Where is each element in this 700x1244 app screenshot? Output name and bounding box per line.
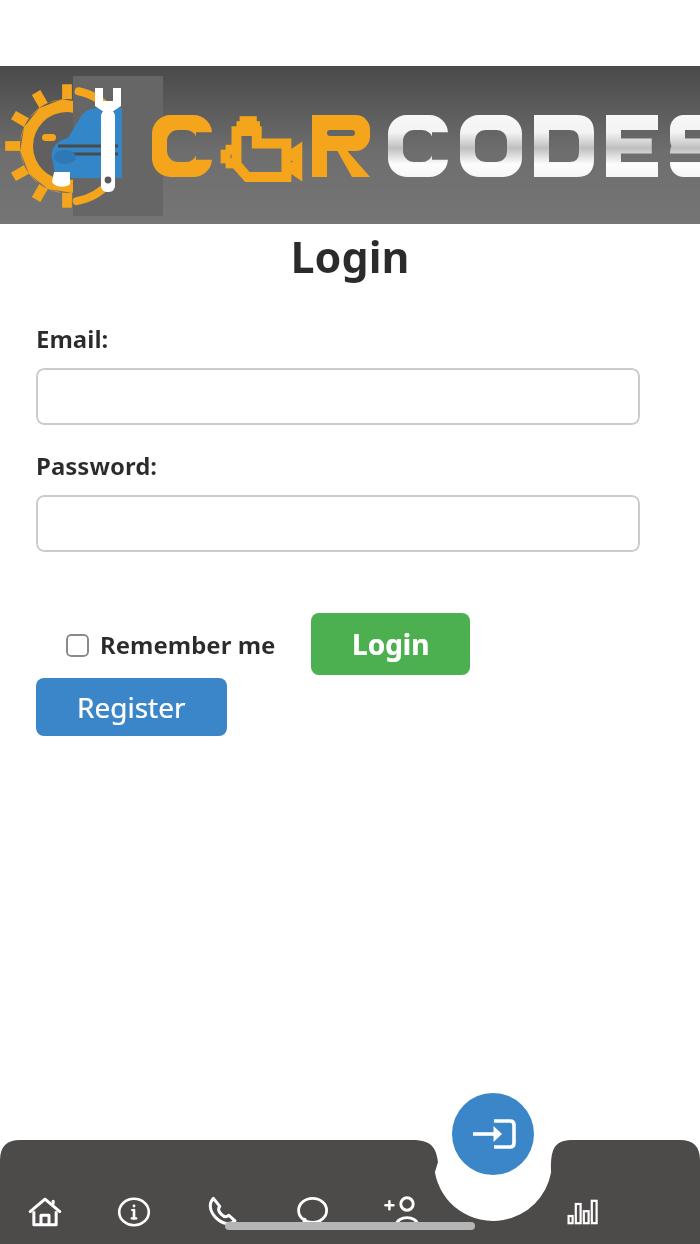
button[interactable]: Call [195,1184,251,1240]
button[interactable]: Login [440,1081,546,1187]
button[interactable]: Statistics [555,1184,611,1240]
button[interactable]: Login [311,613,470,675]
button[interactable]: Sign up [375,1184,431,1240]
staticText: Register [77,688,186,726]
button[interactable] [36,368,640,425]
staticText: Login [352,625,430,663]
button[interactable]: Chat [285,1184,341,1240]
button[interactable]: Login [443,1188,543,1222]
button[interactable]: Home [17,1184,73,1240]
button[interactable] [36,495,640,552]
button[interactable]: Register [36,678,227,736]
button[interactable]: Info [106,1184,162,1240]
button[interactable] [60,624,89,666]
staticText: Login [467,1192,520,1219]
staticText: Remember me [100,628,276,661]
staticText: Email: [36,322,109,355]
staticText: Login [0,227,700,286]
staticText: Password: [36,449,158,482]
